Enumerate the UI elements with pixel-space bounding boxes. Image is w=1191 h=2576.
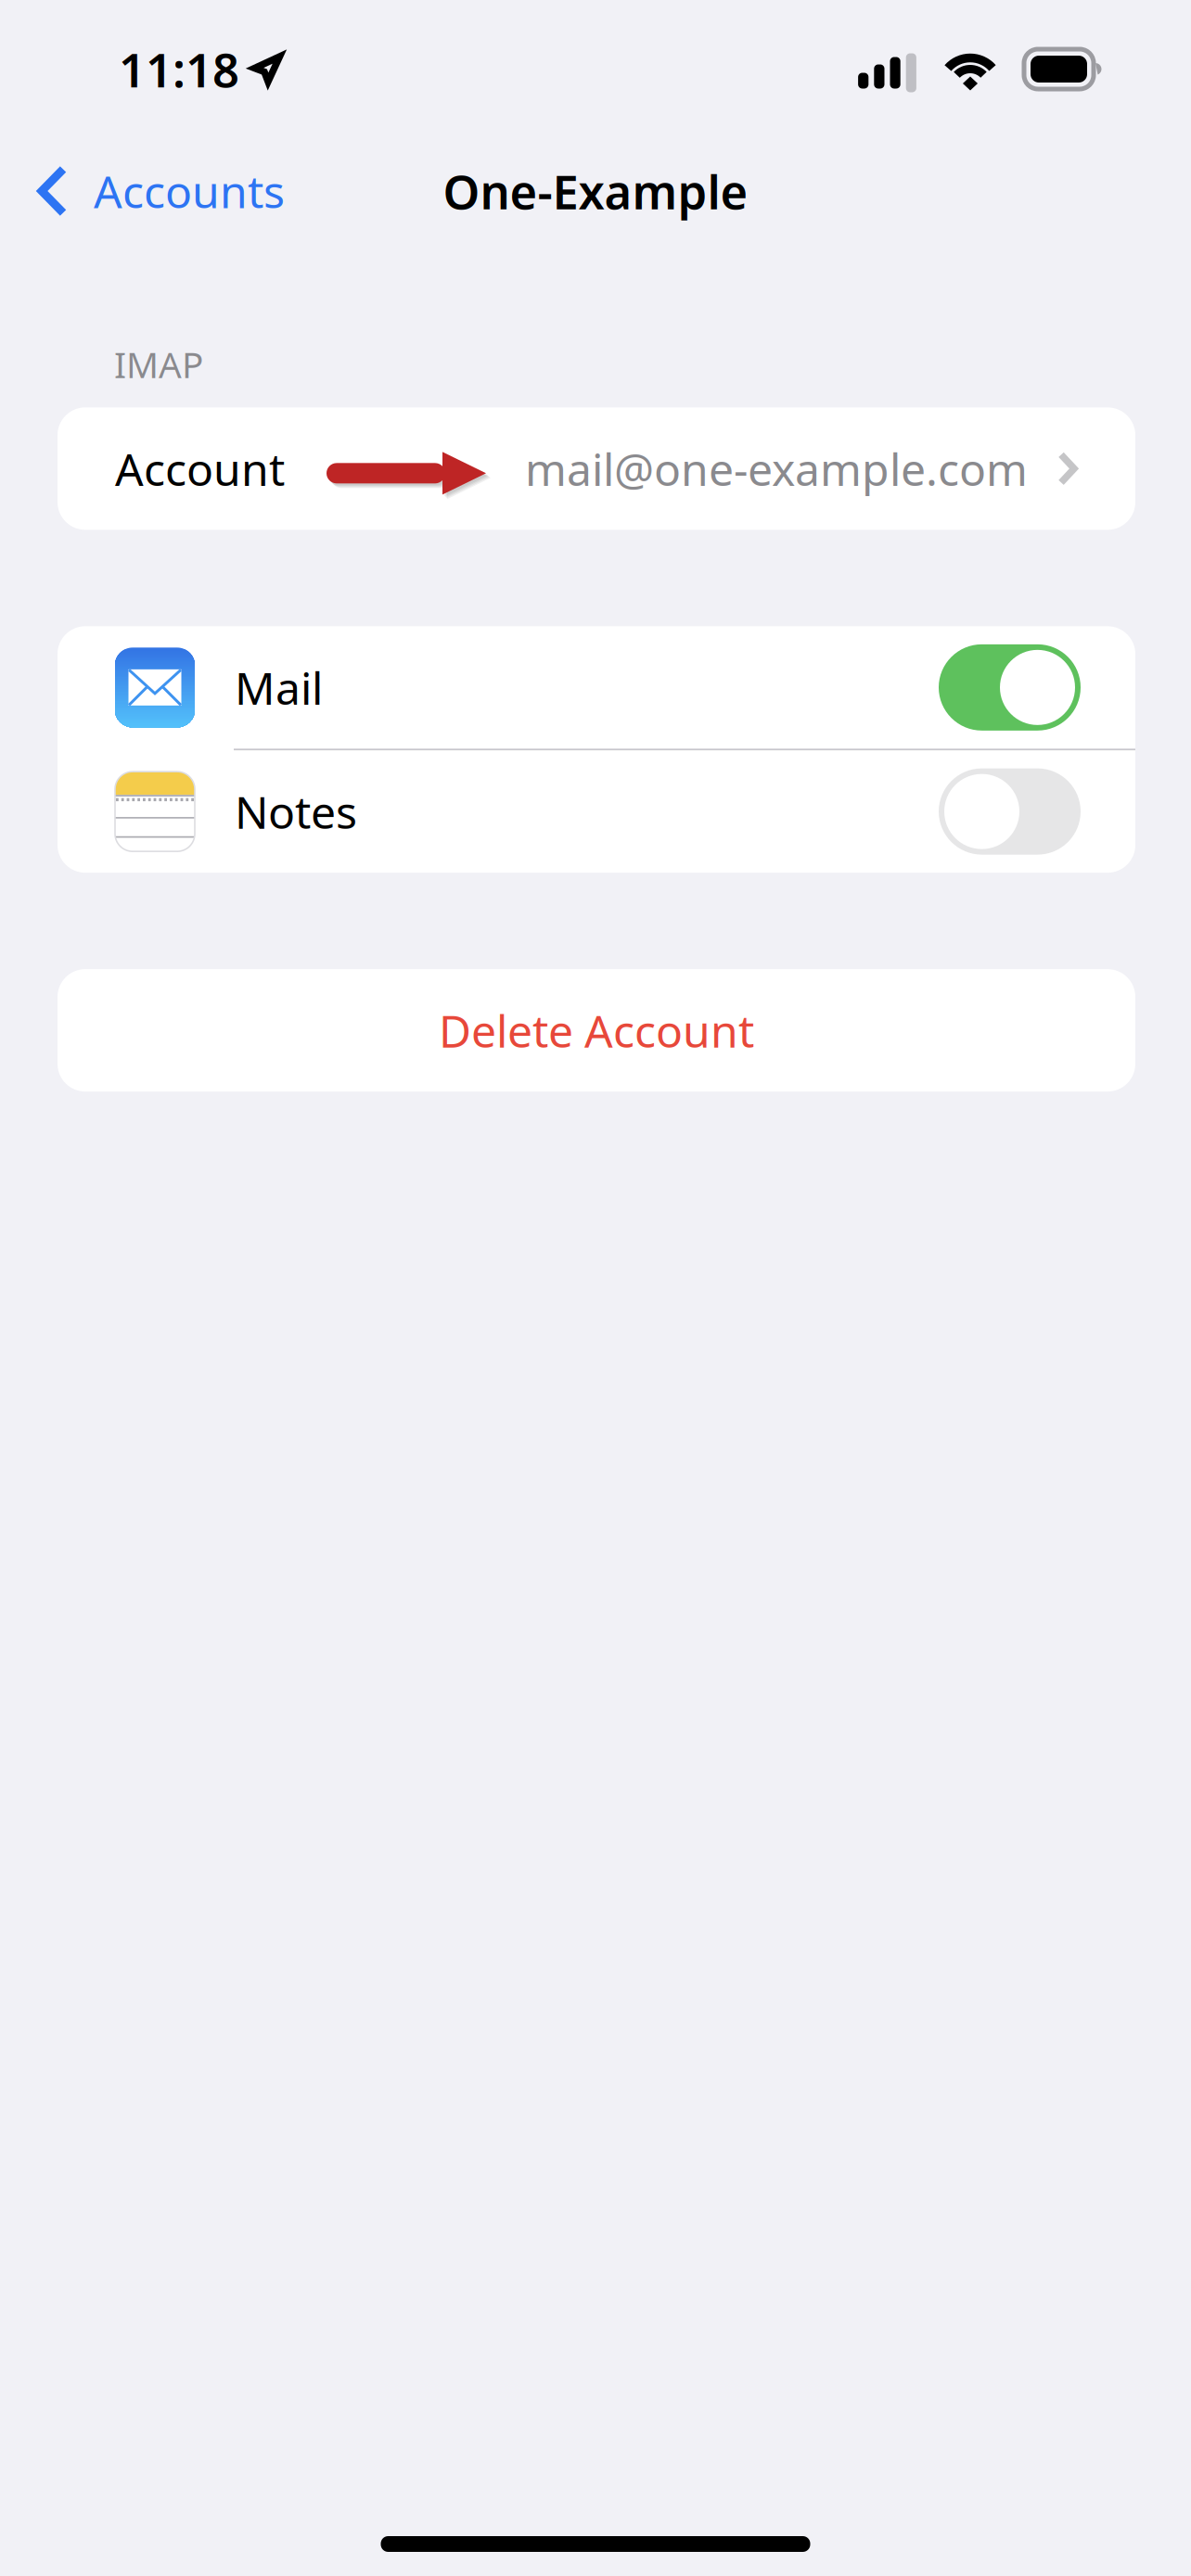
staticText: mail@one-example.com [525,439,1028,498]
staticText: Notes [235,782,357,841]
button[interactable]: Accounts [0,134,307,248]
staticText: Delete Account [439,1001,754,1060]
staticText: One-Example [443,160,748,222]
staticText: 11:18 [119,38,239,100]
staticText: Accounts [94,161,285,221]
button[interactable]: Delete Account [58,969,1135,1092]
staticText: Mail [235,658,323,717]
staticText: IMAP [114,340,203,388]
button[interactable]: Notes [58,750,1135,873]
staticText: Account [115,439,285,498]
button[interactable]: Mail [58,626,1135,749]
button[interactable]: Account [58,407,1135,530]
